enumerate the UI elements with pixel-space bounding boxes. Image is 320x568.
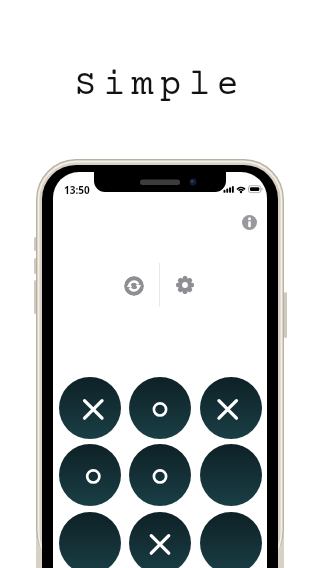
button[interactable] <box>175 275 195 295</box>
button[interactable] <box>129 377 191 439</box>
button[interactable] <box>59 512 121 568</box>
button[interactable] <box>200 377 262 439</box>
button[interactable] <box>59 377 121 439</box>
button[interactable] <box>124 276 144 296</box>
button[interactable] <box>59 444 121 506</box>
button[interactable] <box>129 512 191 568</box>
button[interactable] <box>129 444 191 506</box>
button[interactable] <box>200 444 262 506</box>
button[interactable] <box>200 512 262 568</box>
button[interactable] <box>242 215 257 230</box>
staticText: 13:50 <box>64 183 90 197</box>
staticText: Simple <box>0 66 320 106</box>
